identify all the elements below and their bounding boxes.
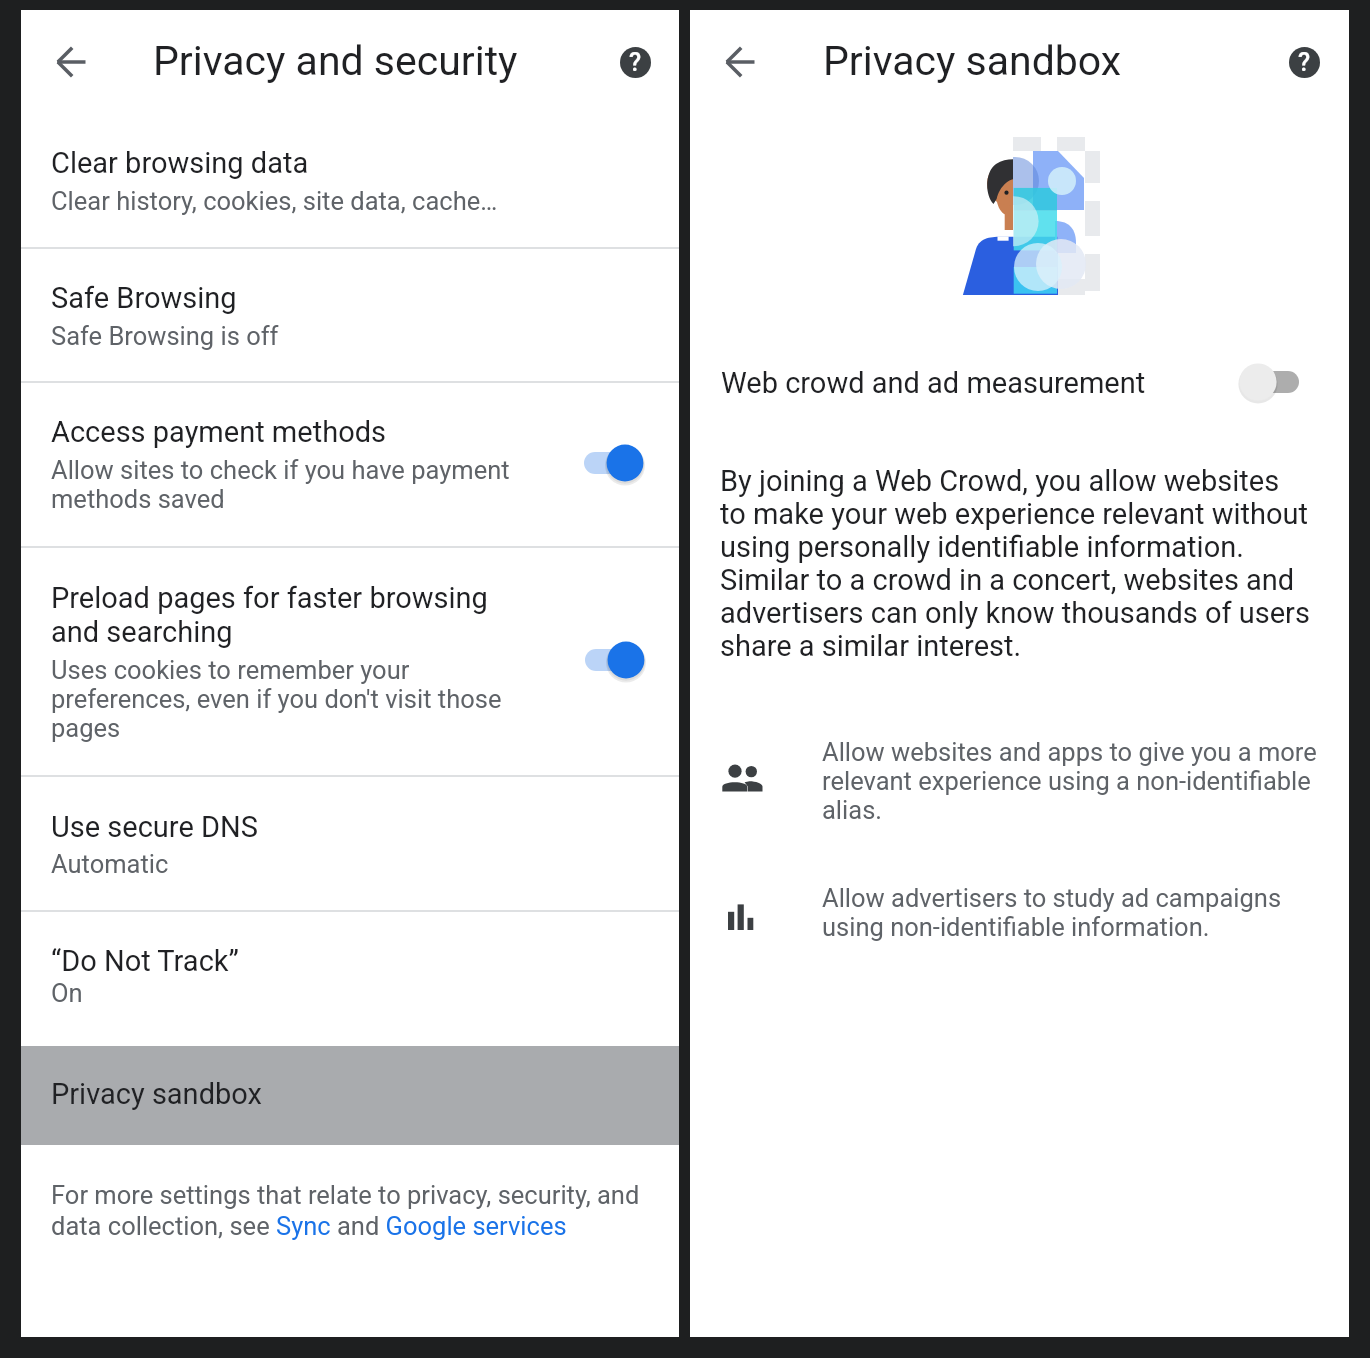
staticText: ? [629,48,642,77]
staticText: Privacy and security [153,37,518,85]
staticText: By joining a Web Crowd, you allow websit… [720,465,1311,663]
staticText: Automatic [51,850,169,879]
staticText: Use secure DNS [51,810,258,844]
button[interactable]: Help [1279,37,1329,87]
staticText: On [51,979,83,1008]
staticText: Clear browsing data [51,146,309,180]
staticText: “Do Not Track” [51,944,239,978]
button[interactable]: Privacy sandbox [21,1046,679,1145]
staticText: Web crowd and ad measurement [721,365,1146,400]
button[interactable]: Help [610,37,660,87]
staticText: Safe Browsing [51,281,237,315]
button[interactable]: “Do Not Track” [21,910,679,1046]
button[interactable]: Clear browsing data [21,105,679,247]
staticText: Privacy sandbox [51,1077,262,1111]
staticText: ? [1298,48,1311,77]
staticText: Preload pages for faster browsing and se… [51,581,531,649]
staticText: Access payment methods [51,415,386,449]
staticText: For more settings that relate to privacy… [51,1179,663,1241]
button[interactable]: Safe Browsing [21,247,679,382]
button[interactable]: Access payment methods [21,381,679,546]
staticText: Uses cookies to remember your preference… [51,656,531,743]
button[interactable]: Back [713,35,767,89]
staticText: Allow websites and apps to give you a mo… [822,738,1334,825]
staticText: Privacy sandbox [823,37,1122,85]
button[interactable]: Web crowd and ad measurement [690,350,1349,435]
button[interactable]: Preload pages for faster browsing and se… [21,546,679,775]
staticText: Clear history, cookies, site data, cache… [51,187,498,216]
staticText: Allow advertisers to study ad campaigns … [822,884,1334,942]
button[interactable]: Back [44,35,98,89]
staticText: Allow sites to check if you have payment… [51,456,531,514]
staticText: Safe Browsing is off [51,322,279,351]
button[interactable]: Use secure DNS [21,775,679,909]
